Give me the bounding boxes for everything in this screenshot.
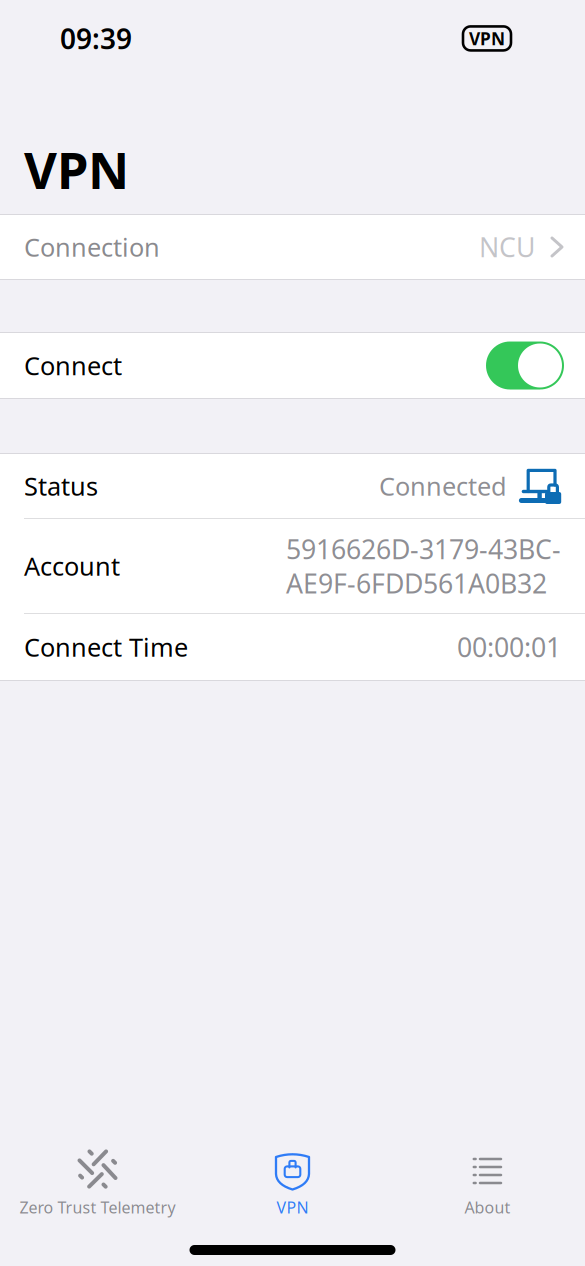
staticText: VPN — [24, 136, 129, 203]
staticText: AE9F-6FDD561A0B32 — [286, 565, 547, 601]
staticText: VPN — [276, 1197, 308, 1218]
staticText: About — [464, 1197, 510, 1218]
staticText: 5916626D-3179-43BC- — [286, 531, 561, 566]
staticText: Account — [24, 549, 120, 583]
staticText: VPN — [469, 27, 505, 50]
staticText: NCU — [479, 229, 535, 265]
button[interactable]: About — [390, 1146, 585, 1218]
staticText: Connection — [24, 230, 160, 264]
staticText: Connect Time — [24, 630, 188, 664]
staticText: Zero Trust Telemetry — [19, 1197, 175, 1218]
staticText: Connect — [24, 349, 122, 382]
staticText: 09:39 — [60, 20, 132, 57]
staticText: Connected — [379, 469, 507, 503]
button[interactable]: Zero Trust Telemetry — [0, 1146, 195, 1218]
button[interactable]: Connect — [486, 341, 564, 389]
staticText: Status — [24, 469, 98, 503]
button[interactable]: VPN — [195, 1146, 390, 1218]
staticText: 00:00:01 — [457, 629, 561, 665]
button[interactable]: Connection — [0, 215, 585, 279]
